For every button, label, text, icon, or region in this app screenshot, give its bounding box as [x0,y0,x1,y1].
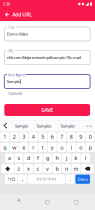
button[interactable]: j [62,153,71,163]
button[interactable]: 5 [38,132,47,141]
button[interactable]: . [66,175,75,184]
staticText: l [85,154,86,162]
staticText: q [3,144,6,151]
button[interactable]: g [43,153,52,163]
button[interactable]: 6 [48,132,57,141]
button[interactable]: l [81,153,90,163]
button[interactable]: r [29,143,38,152]
button[interactable]: y [48,143,57,152]
staticText: i [71,144,72,151]
staticText: b [55,165,58,172]
button[interactable]: d [24,153,33,163]
button[interactable]: f [34,153,42,163]
button[interactable]: 9 [76,132,85,141]
staticText: f [37,154,39,162]
button[interactable]: SAVE [4,104,90,116]
button[interactable]: b [53,164,61,173]
button[interactable]: 0 [86,132,95,141]
staticText: Sampler [60,123,75,129]
button[interactable]: v [43,164,52,173]
staticText: Samples [36,123,51,129]
staticText: g [46,154,49,162]
button[interactable]: m [72,164,80,173]
button[interactable]: Back [9,194,29,210]
staticText: s [17,154,20,162]
staticText: 2 [13,133,16,140]
staticText: 8 [70,133,73,140]
button[interactable]: e [19,143,28,152]
button[interactable]: More suggestions [84,120,95,131]
button[interactable]: o [76,143,85,152]
staticText: m [73,165,78,172]
staticText: 6 [51,133,54,140]
button[interactable]: ?1☺ [5,175,17,184]
button[interactable]: 1 [0,132,9,141]
staticText: e [22,144,25,151]
staticText: Sample [7,79,20,84]
staticText: z [17,165,20,172]
button[interactable]: Home [37,194,57,210]
staticText: 5 [41,133,44,140]
button[interactable]: x [24,164,33,173]
staticText: Optional [8,90,22,96]
staticText: 9 [79,133,82,140]
staticText: 3 [22,133,25,140]
staticText: h [55,154,58,162]
staticText: c [36,165,39,172]
staticText: 4 [32,133,35,140]
staticText: English (India) [36,177,56,181]
button[interactable]: t [38,143,47,152]
button[interactable]: Samples [32,120,56,131]
button[interactable]: Backspace [81,164,93,173]
staticText: w [12,144,16,151]
staticText: Add URL [12,11,32,18]
button[interactable]: 7 [57,132,66,141]
button[interactable]: i [67,143,76,152]
staticText: x [27,165,30,172]
staticText: r [32,144,34,151]
staticText: n [65,165,68,172]
staticText: t [42,144,44,151]
button[interactable]: q [0,143,9,152]
staticText: p [89,144,92,151]
button[interactable]: k [72,153,80,163]
button[interactable]: w [10,143,19,152]
staticText: ?1☺ [7,176,15,182]
staticText: a [8,154,11,162]
staticText: . [70,176,71,183]
staticText: j [66,154,67,162]
button[interactable]: Space [28,175,65,184]
button[interactable]: Sampler [56,120,80,131]
button[interactable]: 2 [10,132,19,141]
button[interactable]: , [18,175,27,184]
button[interactable]: Previous suggestions [0,120,11,131]
button[interactable]: 3 [19,132,28,141]
staticText: ⋯ [86,122,93,130]
staticText: Sample [15,123,28,129]
button[interactable]: z [15,164,23,173]
staticText: 7 [60,133,63,140]
staticText: , [22,176,23,183]
staticText: Done [78,176,88,182]
button[interactable]: Sample [11,120,32,131]
button[interactable]: a [5,153,14,163]
button[interactable]: Shift [1,164,14,173]
button[interactable]: 4 [29,132,38,141]
button[interactable]: c [34,164,42,173]
button[interactable]: Back [2,8,12,21]
staticText: 0 [89,133,92,140]
staticText: SAVE [41,106,53,114]
button[interactable]: Recents [66,194,86,210]
button[interactable]: u [57,143,66,152]
staticText: User Agent [8,73,25,77]
button[interactable]: h [53,153,61,163]
staticText: Title [8,25,15,30]
button[interactable]: s [15,153,23,163]
staticText: 1 [3,133,6,140]
button[interactable]: 8 [67,132,76,141]
button[interactable]: p [86,143,95,152]
staticText: URL [8,49,14,53]
button[interactable]: n [62,164,71,173]
staticText: k [74,154,77,162]
button[interactable]: Done [75,175,90,184]
